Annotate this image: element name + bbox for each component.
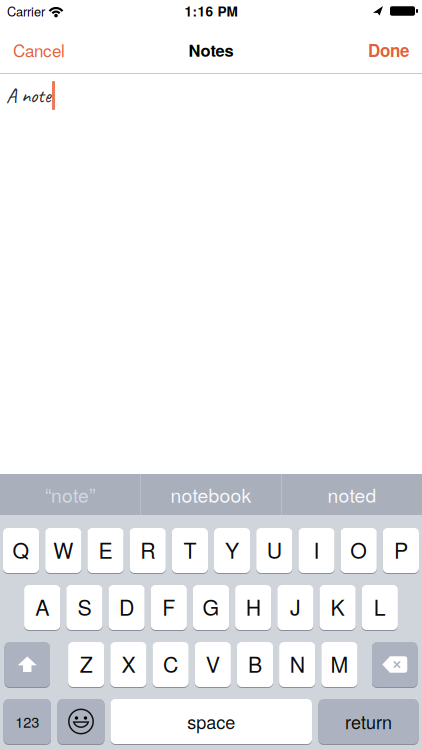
staticText: Cancel <box>13 38 65 62</box>
button[interactable]: Numbers <box>3 699 51 744</box>
button[interactable]: R <box>130 528 166 573</box>
staticText: 123 <box>15 711 39 732</box>
button[interactable]: L <box>362 585 398 630</box>
button[interactable]: U <box>256 528 292 573</box>
staticText: noted <box>327 481 376 508</box>
button[interactable]: D <box>108 585 145 630</box>
button[interactable]: T <box>172 528 208 573</box>
staticText: X <box>121 648 135 679</box>
staticText: Z <box>80 648 93 679</box>
button[interactable]: notebook <box>141 474 281 515</box>
button[interactable]: Shift <box>4 642 50 687</box>
button[interactable]: Y <box>214 528 250 573</box>
staticText: M <box>330 648 348 679</box>
staticText: J <box>290 591 301 622</box>
button[interactable]: noted <box>282 474 422 515</box>
staticText: C <box>163 648 178 679</box>
staticText: space <box>187 709 235 734</box>
button[interactable]: X <box>110 642 146 687</box>
staticText: N <box>290 648 305 679</box>
staticText: G <box>202 591 219 622</box>
staticText: H <box>246 591 261 622</box>
staticText: R <box>140 534 155 565</box>
staticText: L <box>374 591 386 622</box>
staticText: Done <box>368 38 409 62</box>
staticText: P <box>394 534 408 565</box>
button[interactable]: I <box>298 528 335 573</box>
staticText: “note” <box>45 481 95 508</box>
staticText: Y <box>225 534 239 565</box>
staticText: F <box>162 591 175 622</box>
button[interactable]: F <box>151 585 187 630</box>
button[interactable]: B <box>237 642 273 687</box>
button[interactable]: K <box>319 585 356 630</box>
staticText: E <box>98 534 112 565</box>
button[interactable]: Done <box>368 38 422 62</box>
button[interactable]: W <box>45 528 81 573</box>
staticText: D <box>119 591 134 622</box>
button[interactable]: S <box>66 585 102 630</box>
staticText: S <box>77 591 91 622</box>
button[interactable]: Emoji <box>57 699 104 744</box>
button[interactable]: Z <box>68 642 104 687</box>
button[interactable]: P <box>383 528 419 573</box>
staticText: Q <box>13 534 30 565</box>
button[interactable]: H <box>235 585 271 630</box>
button[interactable]: J <box>277 585 313 630</box>
button[interactable]: Delete <box>372 642 417 687</box>
staticText: A <box>35 591 49 622</box>
button[interactable]: Q <box>3 528 39 573</box>
staticText: U <box>267 534 282 565</box>
staticText: K <box>331 591 345 622</box>
button[interactable]: N <box>279 642 315 687</box>
staticText: T <box>183 534 196 565</box>
button[interactable]: E <box>87 528 124 573</box>
button[interactable]: Cancel <box>0 38 65 62</box>
button[interactable]: V <box>195 642 231 687</box>
staticText: W <box>53 534 73 565</box>
staticText: return <box>345 709 392 734</box>
staticText: B <box>248 648 262 679</box>
button[interactable]: A <box>24 585 60 630</box>
staticText: notebook <box>170 481 251 508</box>
button[interactable]: O <box>341 528 377 573</box>
button[interactable]: M <box>321 642 357 687</box>
staticText: Carrier <box>7 2 45 20</box>
button[interactable]: “note” <box>0 474 140 515</box>
staticText: Notes <box>188 38 233 62</box>
staticText: 1:16 PM <box>184 1 237 21</box>
staticText: A note <box>6 82 51 109</box>
button[interactable]: space <box>110 699 312 744</box>
staticText: O <box>350 534 367 565</box>
staticText: V <box>206 648 220 679</box>
staticText: I <box>313 534 319 565</box>
button[interactable]: return <box>318 699 418 744</box>
button[interactable]: G <box>193 585 229 630</box>
button[interactable]: C <box>152 642 189 687</box>
